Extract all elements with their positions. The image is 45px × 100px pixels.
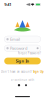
- staticText: Sign In: [15, 58, 29, 64]
- staticText: Sign Up: [33, 70, 44, 73]
- button[interactable]: Sign In: [4, 58, 41, 64]
- button[interactable]: Email: [4, 36, 41, 42]
- button[interactable]: Sign in with Apple: [17, 84, 20, 87]
- staticText: Password: [10, 45, 27, 51]
- staticText: Don't have an account?: [1, 70, 32, 73]
- button[interactable]: Don't have an account?: [1, 70, 44, 73]
- staticText: Forgot Password?: [18, 51, 41, 55]
- staticText: 9:41: [4, 2, 11, 7]
- button[interactable]: Password: [4, 45, 41, 51]
- button[interactable]: Sign in with Google: [24, 84, 27, 87]
- staticText: or continue with: [10, 78, 34, 82]
- button[interactable]: Forgot Password?: [18, 51, 41, 55]
- staticText: Email: [10, 36, 20, 42]
